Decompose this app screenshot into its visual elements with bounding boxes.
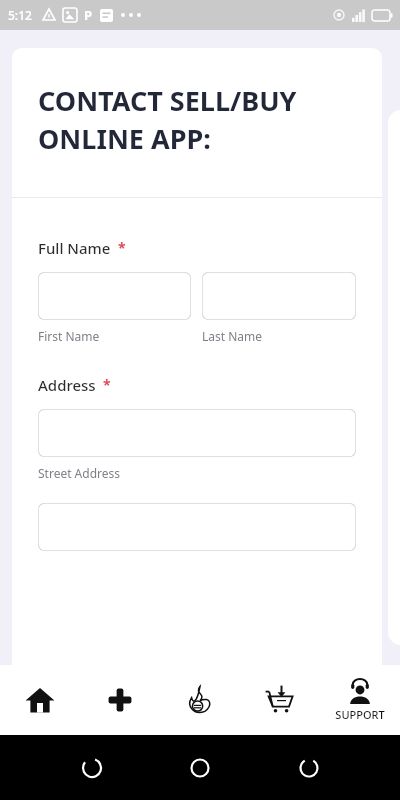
button[interactable]: Hot deals [160,665,240,735]
button[interactable]: Back [75,751,109,785]
staticText: CONTACT SELL/BUY ONLINE APP: [38,82,356,157]
button[interactable]: SUPPORT [320,665,400,735]
staticText: Last Name [202,328,263,344]
staticText: * [103,375,111,394]
staticText: Address [38,375,96,395]
staticText: 5:12 [8,7,32,23]
button[interactable]: Recents [292,751,326,785]
button[interactable] [38,409,356,457]
button[interactable] [38,272,191,320]
staticText: P [84,6,93,24]
button[interactable]: Home [183,751,217,785]
button[interactable] [38,503,356,551]
staticText: * [118,238,126,257]
staticText: Street Address [38,465,121,481]
staticText: SUPPORT [335,707,385,722]
button[interactable]: Add [80,665,160,735]
staticText: First Name [38,328,100,344]
button[interactable]: Cart [240,665,320,735]
button[interactable]: Home [0,665,80,735]
staticText: Full Name [38,238,111,258]
button[interactable] [202,272,356,320]
